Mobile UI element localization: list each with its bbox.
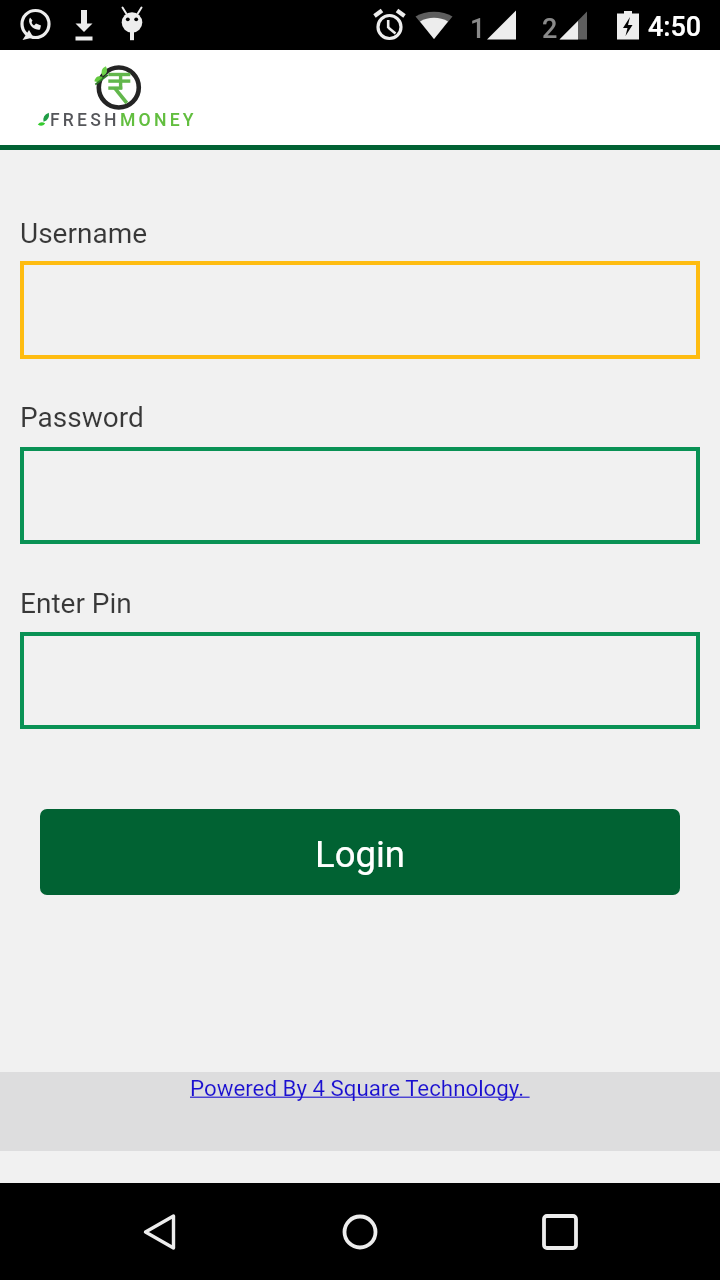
staticText: 4:50 [648, 11, 702, 43]
button[interactable]: Powered By 4 Square Technology. [0, 1072, 720, 1151]
staticText: Password [20, 401, 144, 434]
staticText: Username [20, 217, 148, 250]
staticText: Enter Pin [20, 587, 132, 620]
button[interactable]: Recents [510, 1183, 610, 1280]
button[interactable]: Login [40, 809, 680, 895]
button[interactable]: Back [110, 1183, 210, 1280]
staticText: 2 [542, 13, 558, 45]
staticText: 1 [470, 13, 486, 45]
button[interactable]: Password input field [20, 447, 700, 544]
staticText: Powered By 4 Square Technology. [190, 1075, 530, 1101]
button[interactable]: Home [310, 1183, 410, 1280]
staticText: MONEY [120, 110, 197, 131]
button[interactable]: Enter Pin input field [20, 632, 700, 729]
staticText: Login [315, 833, 406, 876]
button[interactable]: Username input field [20, 261, 700, 359]
staticText: FRESH [50, 110, 120, 131]
